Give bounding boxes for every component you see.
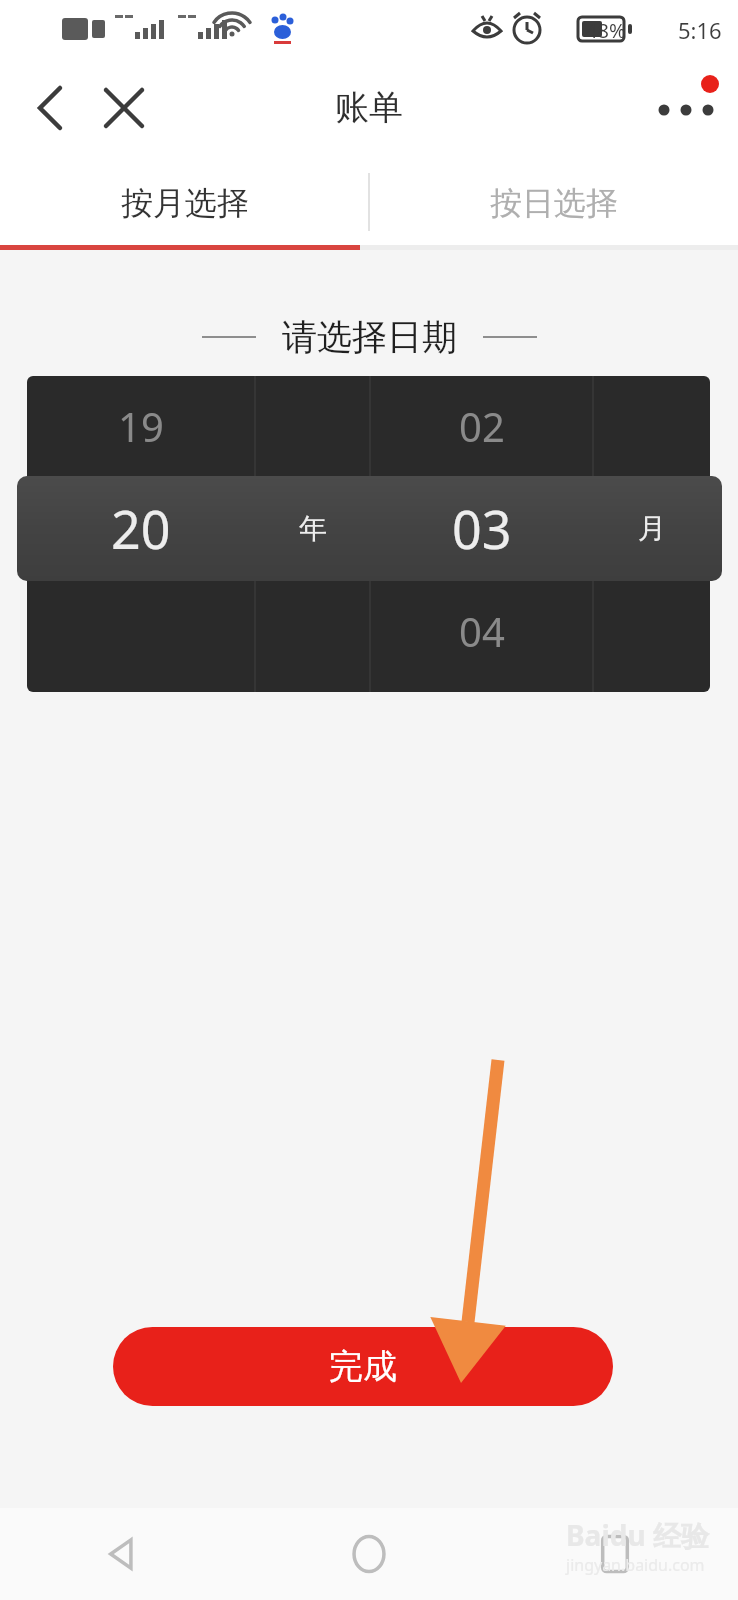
button[interactable]: Back [14,72,86,144]
staticText: 20 [111,493,171,564]
staticText: 04 [459,604,505,658]
button[interactable]: 按日选择 [369,155,738,250]
button[interactable]: 19 [27,376,255,476]
button[interactable]: 04 [370,581,593,681]
staticText: 按日选择 [490,183,618,223]
staticText: 按月选择 [121,183,249,223]
staticText: 48% [586,17,626,44]
button[interactable]: 20 [27,476,255,581]
staticText: 03 [452,493,512,564]
staticText: 请选择日期 [282,315,457,359]
staticText: 完成 [329,1345,397,1388]
staticText: 19 [118,399,164,453]
button[interactable]: 02 [370,376,593,476]
staticText: 年 [299,511,327,546]
button[interactable]: More options [646,68,726,148]
staticText: Baidu 经验 [566,1516,709,1554]
staticText: 02 [459,399,505,453]
button[interactable]: 完成 [113,1327,613,1406]
staticText: 5:16 [678,15,722,45]
button[interactable]: 按月选择 [0,155,369,250]
button[interactable]: Recent apps [492,1508,738,1600]
staticText: 月 [638,511,666,546]
staticText: jingyan.baidu.com [566,1554,705,1576]
button[interactable]: Close [88,72,160,144]
button[interactable]: 03 [370,476,593,581]
staticText: 账单 [335,86,403,129]
button[interactable]: Back [0,1508,246,1600]
button[interactable]: Home [246,1508,492,1600]
